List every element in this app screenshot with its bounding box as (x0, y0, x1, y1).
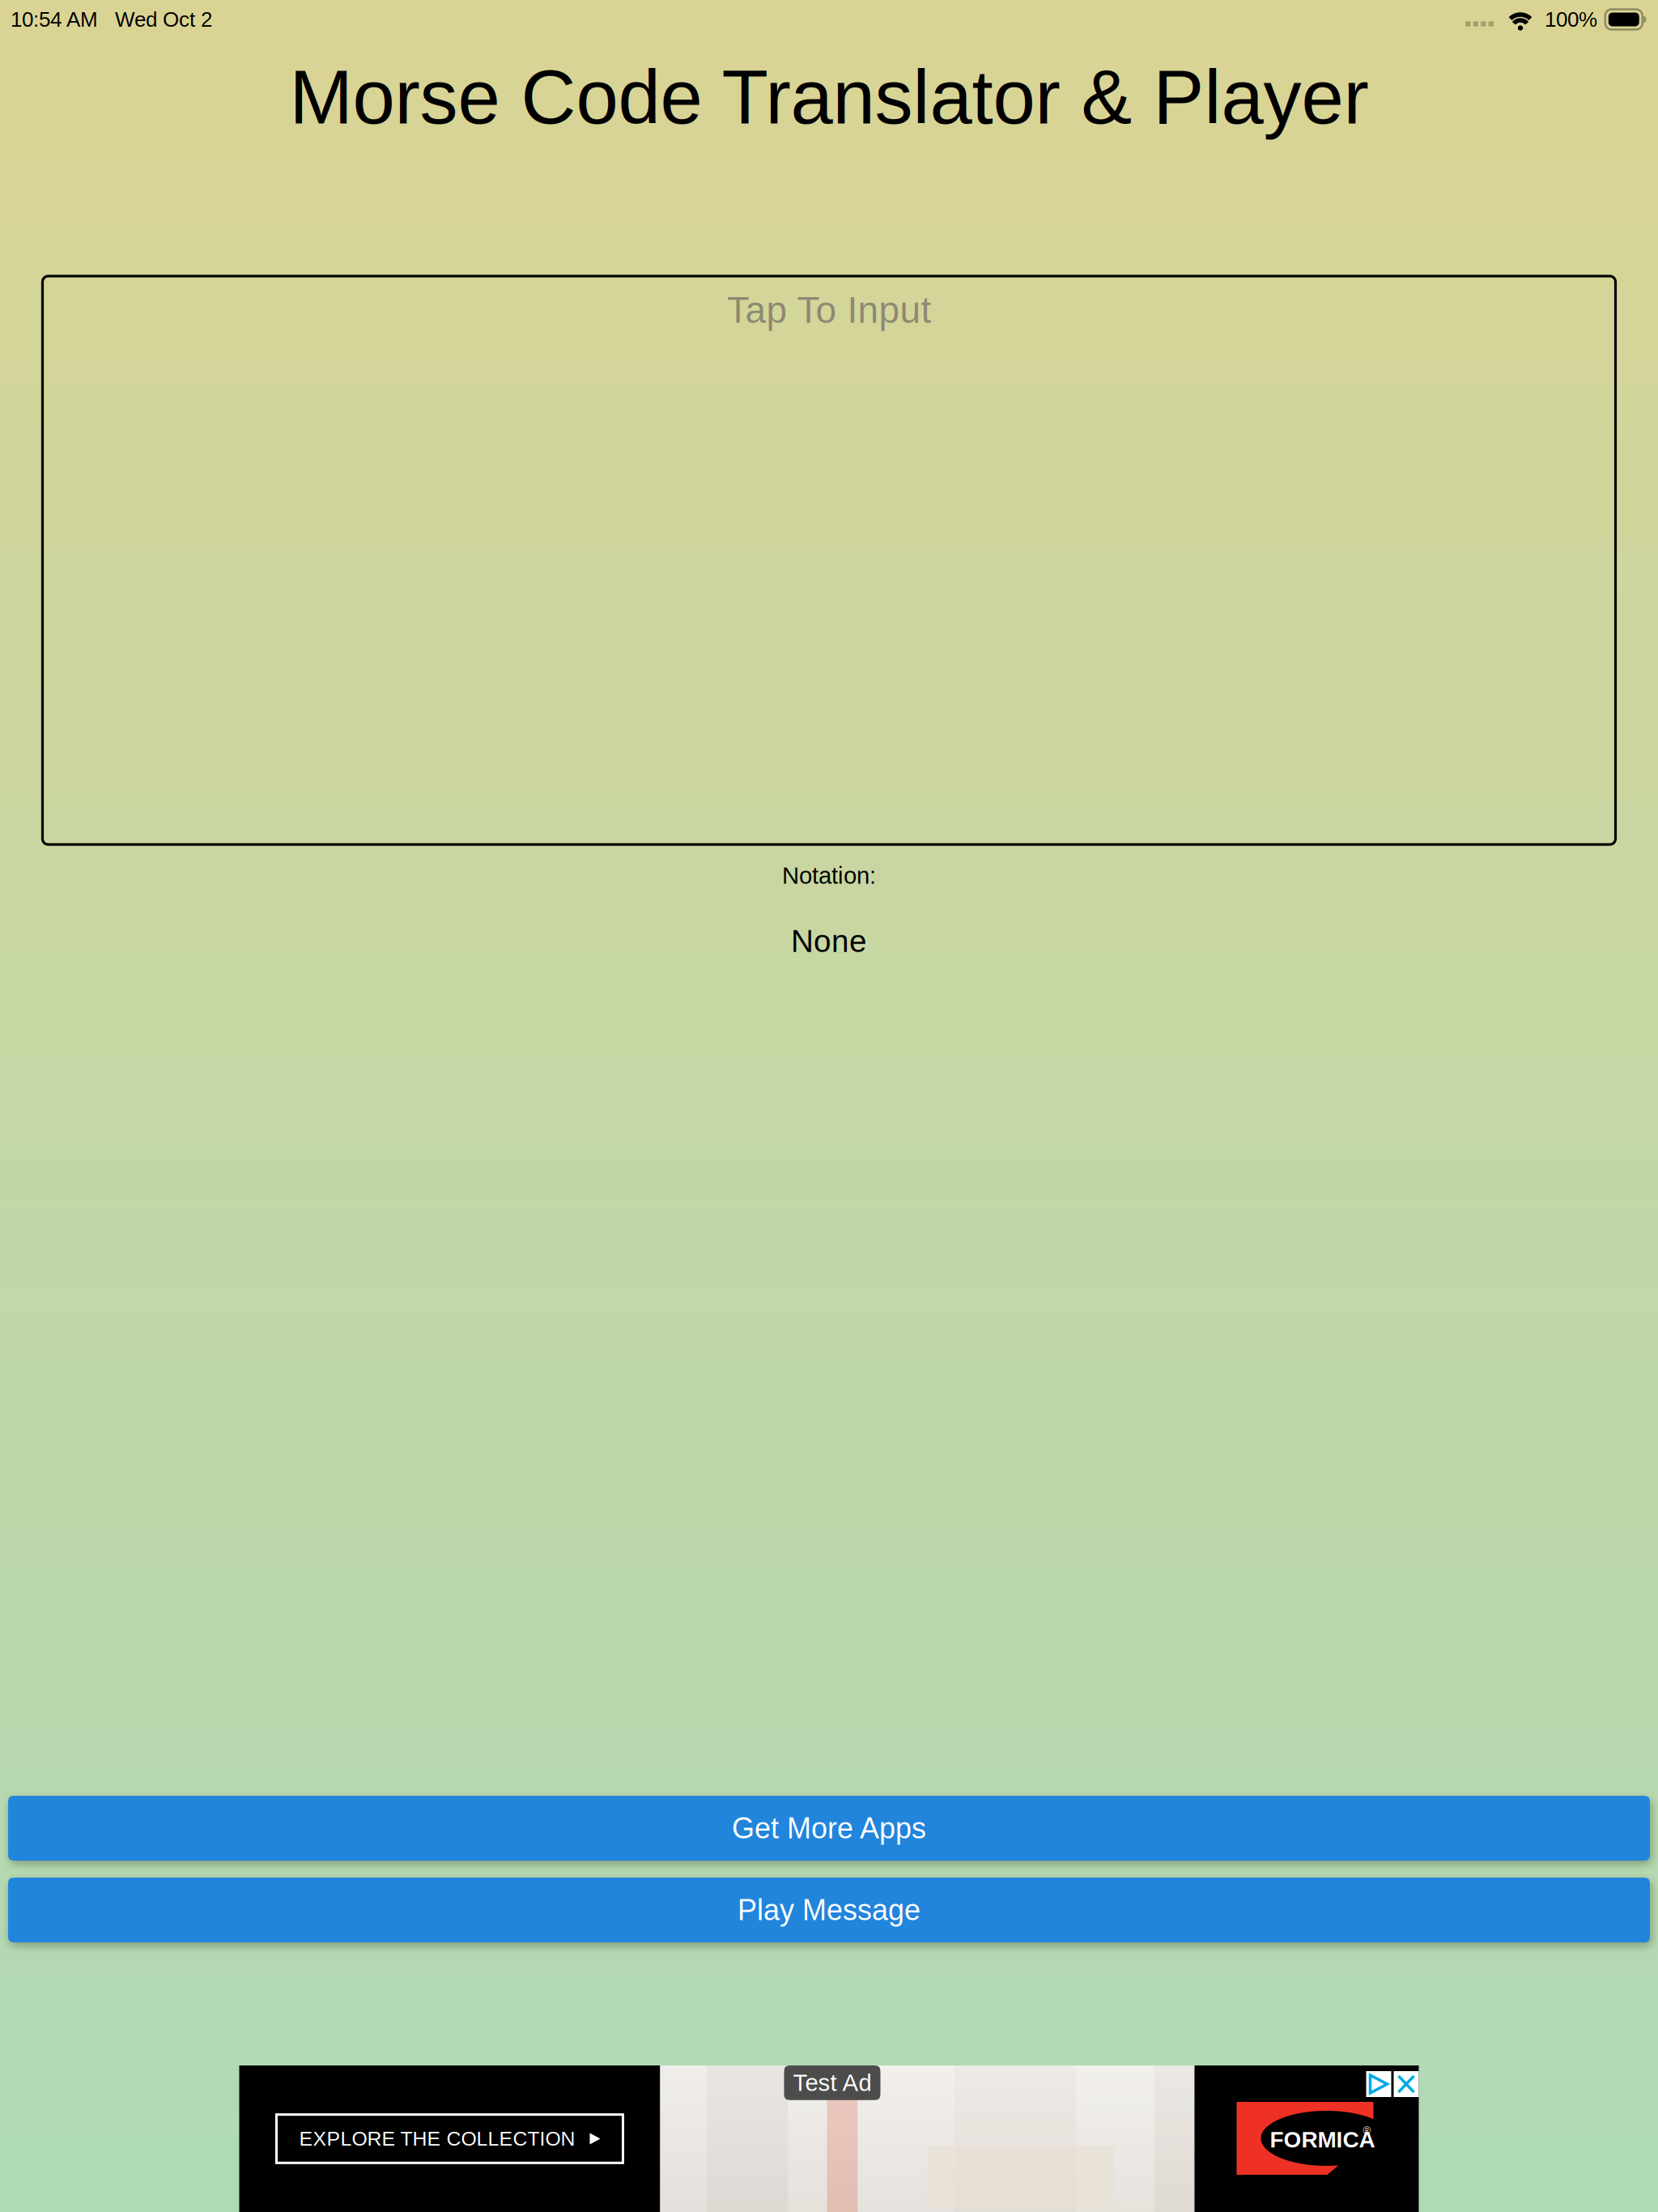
staticText: 10:54 AM (11, 8, 98, 31)
staticText: Notation: (782, 862, 876, 889)
button[interactable]: Tap To Input (43, 276, 1615, 844)
button[interactable]: Get More Apps (8, 1796, 1650, 1861)
staticText: Morse Code Translator & Player (289, 55, 1369, 140)
button[interactable]: Play Message (8, 1878, 1650, 1942)
staticText: Get More Apps (732, 1812, 926, 1844)
staticText: EXPLORE THE COLLECTION (299, 2127, 575, 2150)
staticText: Tap To Input (727, 289, 931, 331)
staticText: Play Message (738, 1894, 920, 1926)
staticText: Test Ad (793, 2069, 872, 2096)
staticText: 100% (1545, 8, 1597, 31)
staticText: FORMICA (1270, 2127, 1375, 2152)
staticText: Wed Oct 2 (115, 8, 212, 31)
staticText: None (791, 924, 867, 959)
staticText: ® (1363, 2125, 1371, 2137)
